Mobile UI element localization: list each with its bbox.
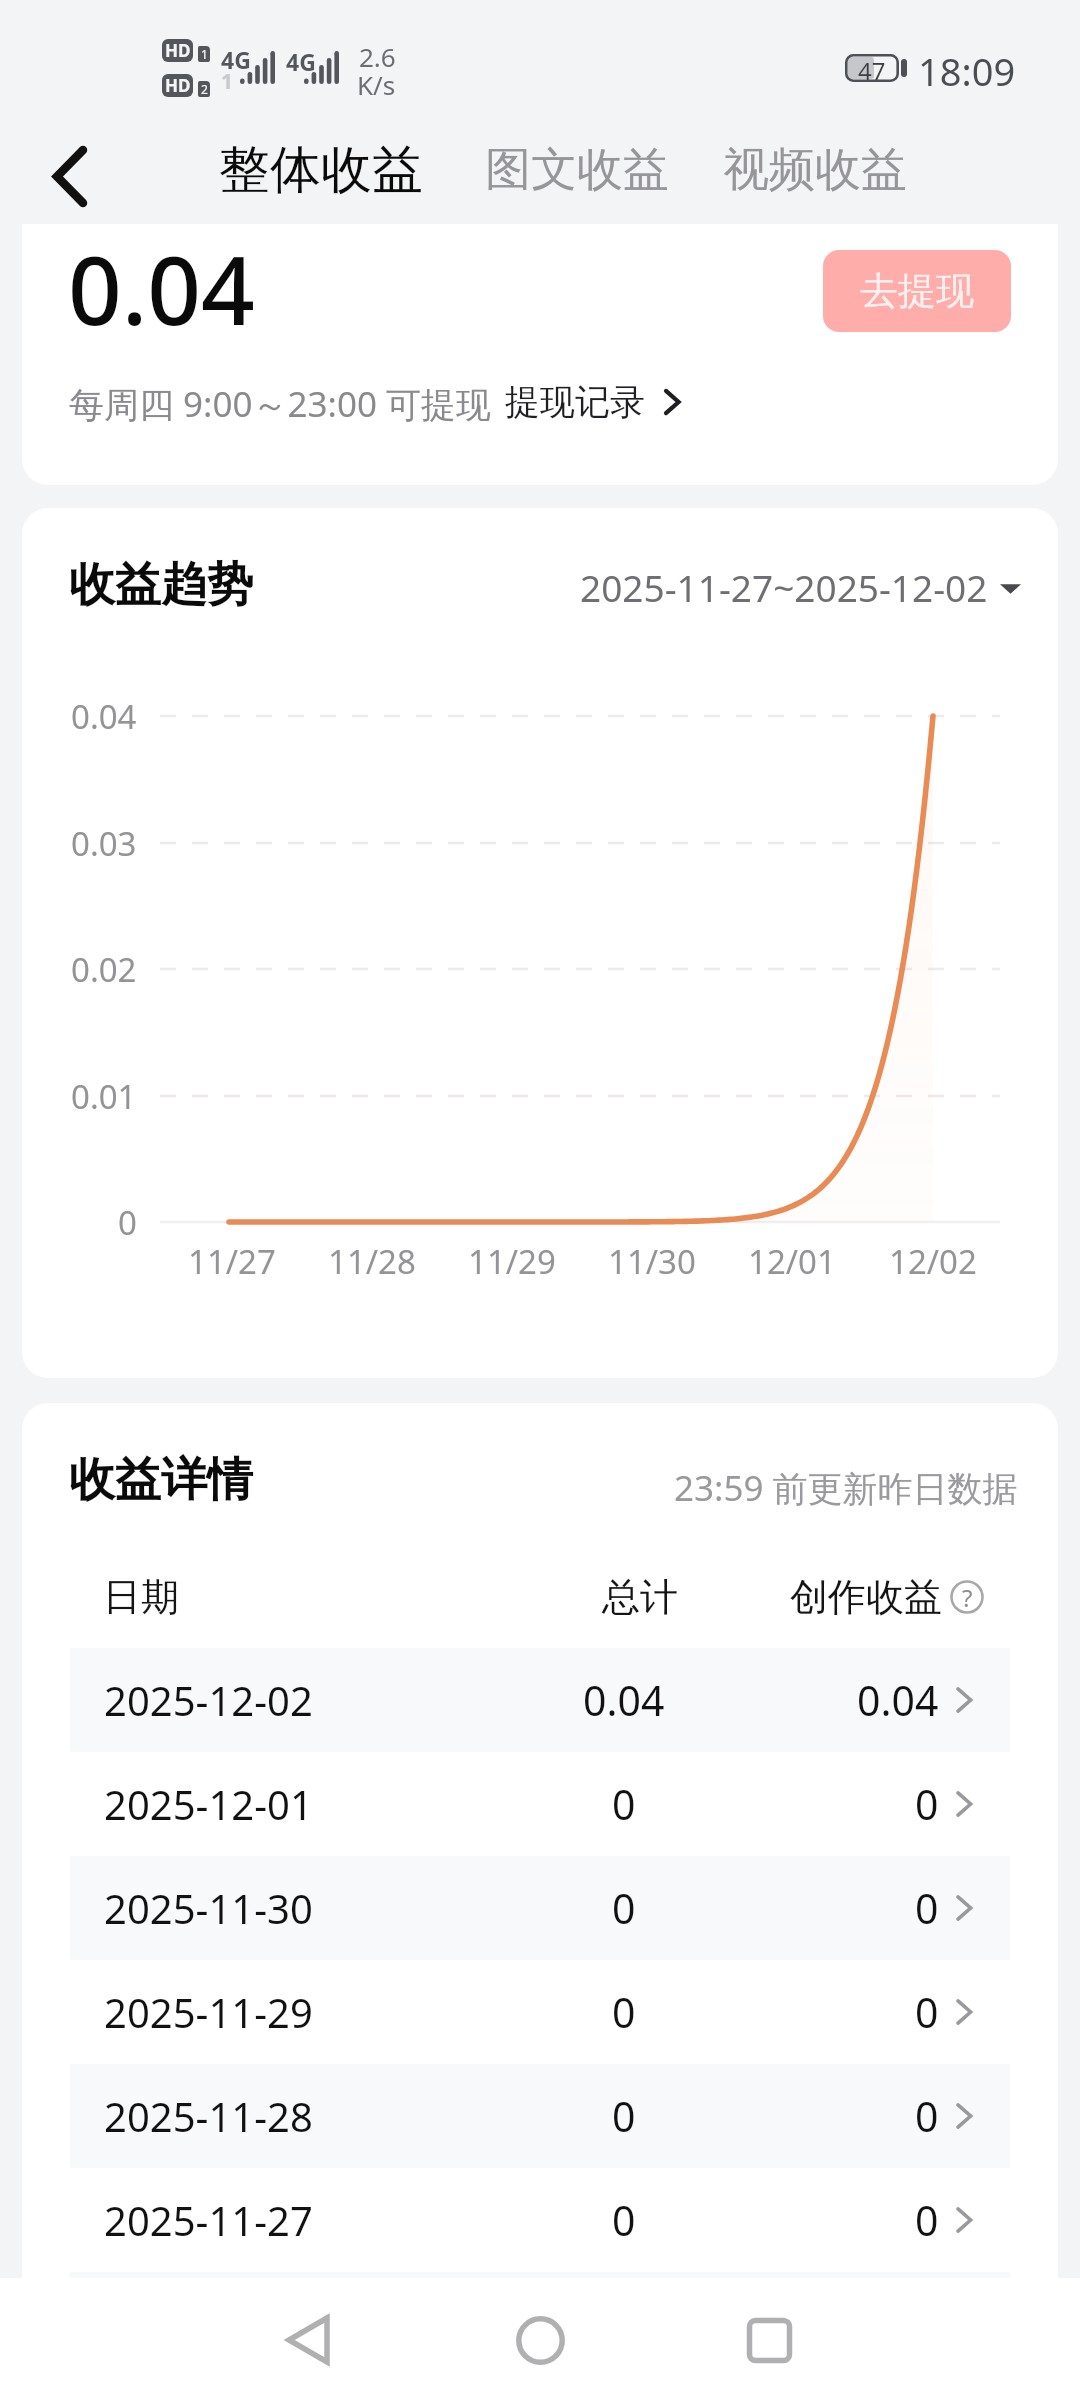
button[interactable]: 提现记录	[505, 380, 687, 424]
staticText: 2025-12-01	[104, 1777, 313, 1831]
button[interactable]: 2025-11-29	[70, 1960, 1010, 2064]
button[interactable]: Help	[950, 1580, 984, 1614]
button[interactable]: Home	[480, 2280, 600, 2400]
staticText: 1	[201, 46, 208, 62]
button[interactable]: Back	[248, 2280, 368, 2400]
button[interactable]: 2025-11-30	[70, 1856, 1010, 1960]
staticText: HD	[165, 39, 191, 62]
staticText: 2025-11-29	[104, 1985, 313, 2039]
staticText: 18:09	[918, 45, 1016, 97]
staticText: 0.04	[68, 225, 255, 353]
button[interactable]: 整体收益	[219, 138, 423, 202]
button[interactable]: 2025-11-28	[70, 2064, 1010, 2168]
staticText: 0	[915, 1776, 939, 1832]
staticText: 0	[612, 1984, 636, 2040]
staticText: 4G	[221, 44, 251, 75]
staticText: 0	[118, 1200, 137, 1244]
staticText: 总计	[602, 1573, 678, 1621]
staticText: 2025-11-30	[104, 1881, 313, 1935]
button[interactable]: 图文收益	[485, 141, 669, 199]
staticText: 2025-11-26	[104, 2297, 313, 2351]
staticText: 0	[612, 1776, 636, 1832]
staticText: 创作收益	[790, 1573, 942, 1621]
staticText: 11/27	[188, 1239, 276, 1283]
staticText: 2.6	[359, 39, 396, 74]
staticText: 视频收益	[723, 141, 907, 199]
staticText: K/s	[357, 67, 396, 102]
button[interactable]: 去提现	[823, 250, 1011, 332]
staticText: 整体收益	[219, 138, 423, 202]
staticText: 23:59 前更新昨日数据	[674, 1464, 1018, 1512]
staticText: 0	[612, 2192, 636, 2248]
staticText: 1	[221, 67, 234, 96]
staticText: 0.04	[71, 694, 137, 738]
staticText: 12/02	[889, 1239, 977, 1283]
staticText: 收益趋势	[69, 556, 253, 614]
staticText: 12/01	[748, 1239, 836, 1283]
staticText: 0.04	[583, 1672, 665, 1728]
button[interactable]: 2025-11-27	[70, 2168, 1010, 2272]
staticText: 47	[858, 54, 886, 82]
staticText: 图文收益	[485, 141, 669, 199]
staticText: 4G	[286, 46, 316, 77]
staticText: 11/28	[328, 1239, 416, 1283]
staticText: 2025-12-02	[104, 1673, 313, 1727]
staticText: 0.03	[71, 821, 137, 865]
button[interactable]: 2025-11-26	[70, 2272, 1010, 2376]
button[interactable]: 2025-12-02	[70, 1648, 1010, 1752]
staticText: 0.02	[71, 947, 137, 991]
staticText: 0	[612, 2088, 636, 2144]
staticText: 0	[915, 2192, 939, 2248]
staticText: 11/29	[468, 1239, 556, 1283]
button[interactable]: 2025-12-01	[70, 1752, 1010, 1856]
staticText: 每周四 9:00～23:00 可提现	[69, 380, 492, 428]
button[interactable]: Recents	[709, 2280, 829, 2400]
button[interactable]: Back	[30, 136, 110, 216]
staticText: 2025-11-27~2025-12-02	[580, 562, 988, 612]
staticText: 2025-11-27	[104, 2193, 313, 2247]
button[interactable]: 2025-11-27~2025-12-02	[580, 562, 1021, 612]
staticText: 0	[915, 1880, 939, 1936]
staticText: 收益详情	[69, 1451, 253, 1509]
staticText: 0	[915, 1984, 939, 2040]
staticText: 去提现	[860, 267, 974, 315]
staticText: 0.01	[71, 1074, 137, 1118]
staticText: ?	[962, 1581, 973, 1614]
staticText: 0	[915, 2088, 939, 2144]
staticText: 提现记录	[505, 380, 645, 424]
staticText: 2	[201, 81, 208, 97]
staticText: 11/30	[608, 1239, 696, 1283]
button[interactable]: 视频收益	[723, 141, 907, 199]
staticText: 日期	[103, 1573, 179, 1621]
staticText: 2025-11-28	[104, 2089, 313, 2143]
staticText: 0	[612, 1880, 636, 1936]
staticText: 0.04	[857, 1672, 939, 1728]
staticText: HD	[165, 74, 191, 97]
